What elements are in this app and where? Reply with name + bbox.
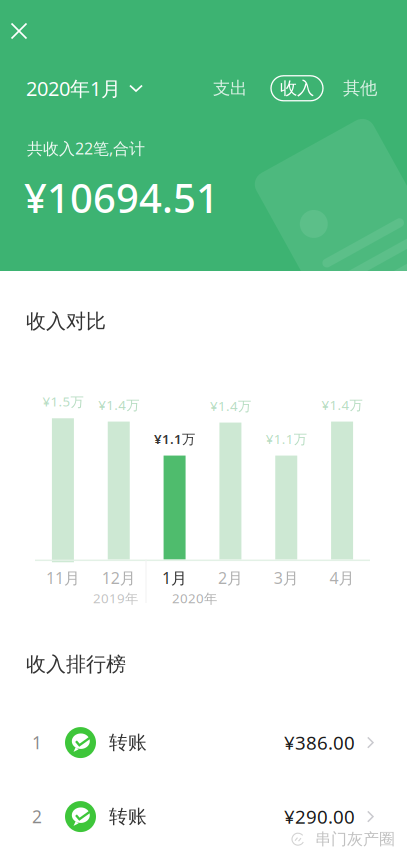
staticText: 1月	[162, 567, 187, 588]
staticText: 共收入22笔,合计	[27, 138, 145, 159]
staticText: ¥1.4万	[210, 397, 251, 415]
staticText: 3月	[274, 567, 299, 588]
staticText: ¥1.5万	[42, 393, 83, 410]
staticText: 4月	[330, 567, 355, 588]
staticText: ¥290.00	[284, 804, 355, 829]
staticText: ¥1.4万	[98, 396, 139, 414]
staticText: 2020年1月	[26, 75, 121, 102]
staticText: 收入对比	[26, 309, 106, 334]
staticText: ¥10694.51	[24, 171, 219, 224]
staticText: 收入排行榜	[26, 652, 126, 677]
staticText: 其他	[343, 78, 377, 99]
staticText: 转账	[109, 805, 147, 828]
staticText: 2月	[218, 567, 243, 588]
staticText: 2019年	[93, 589, 138, 607]
staticText: ¥1.1万	[266, 430, 307, 448]
staticText: 串门灰产圈	[315, 829, 395, 849]
staticText: 11月	[46, 567, 80, 588]
staticText: 转账	[109, 731, 147, 754]
button[interactable]: Close	[0, 9, 41, 53]
staticText: 收入	[280, 78, 314, 99]
button[interactable]: 收入	[271, 76, 323, 101]
button[interactable]: 1	[0, 706, 407, 780]
staticText: ¥1.1万	[154, 430, 195, 448]
staticText: ¥1.4万	[322, 396, 363, 414]
button[interactable]: 2	[0, 780, 407, 854]
staticText: 2020年	[172, 589, 217, 607]
button[interactable]: 其他	[339, 75, 381, 101]
staticText: 支出	[213, 78, 247, 99]
staticText: 12月	[102, 567, 136, 588]
button[interactable]: 2020年1月	[26, 69, 142, 108]
staticText: 2	[32, 805, 42, 828]
staticText: ¥386.00	[284, 730, 355, 755]
staticText: 1	[32, 731, 42, 754]
button[interactable]: 支出	[209, 75, 251, 101]
